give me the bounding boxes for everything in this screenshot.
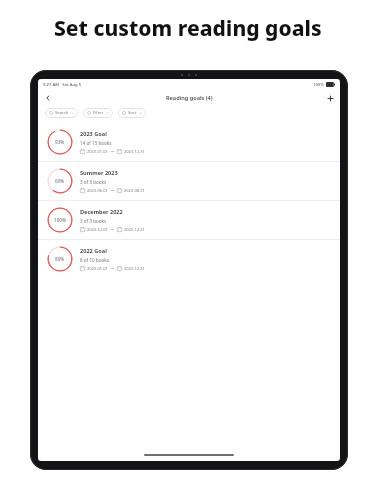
button[interactable]: 80% — [38, 240, 340, 278]
button[interactable]: Search — [45, 108, 78, 118]
button[interactable]: Back — [41, 91, 55, 105]
staticText: 8 of 10 books — [80, 257, 109, 263]
staticText: 3 of 3 books — [80, 218, 107, 224]
staticText: 80% — [55, 256, 65, 262]
staticText: Sort — [128, 110, 137, 116]
staticText: 2023-01-01 — [87, 149, 108, 154]
staticText: Reading goals (4) — [166, 94, 213, 102]
staticText: 2022-01-01 — [87, 266, 108, 271]
button[interactable]: 93% — [38, 123, 340, 161]
staticText: 2022-12-31 — [124, 266, 145, 271]
staticText: Search — [55, 110, 69, 116]
staticText: 2023-06-01 — [87, 188, 108, 193]
staticText: 100% — [54, 217, 66, 223]
staticText: 2022-12-31 — [124, 227, 145, 232]
staticText: Set custom reading goals — [54, 14, 322, 43]
staticText: 2022-12-01 — [87, 227, 108, 232]
button[interactable]: Filter — [83, 108, 113, 118]
staticText: 2023 Goal — [80, 130, 107, 138]
staticText: 2022 Goal — [80, 247, 107, 255]
staticText: 60% — [55, 178, 65, 184]
button[interactable]: Add goal — [323, 91, 337, 105]
staticText: 2023-08-31 — [124, 188, 145, 193]
staticText: 14 of 15 books — [80, 140, 112, 146]
button[interactable]: 100% — [38, 201, 340, 239]
button[interactable]: 60% — [38, 162, 340, 200]
button[interactable]: Sort — [118, 108, 146, 118]
staticText: Filter — [93, 110, 104, 116]
staticText: December 2022 — [80, 208, 123, 216]
staticText: 2023-12-31 — [124, 149, 145, 154]
staticText: 93% — [55, 139, 65, 145]
staticText: 100% — [313, 82, 324, 88]
staticText: Summer 2023 — [80, 169, 118, 177]
staticText: 9:27 AM Sat Aug 5 — [43, 82, 82, 88]
staticText: 3 of 5 books — [80, 179, 107, 185]
